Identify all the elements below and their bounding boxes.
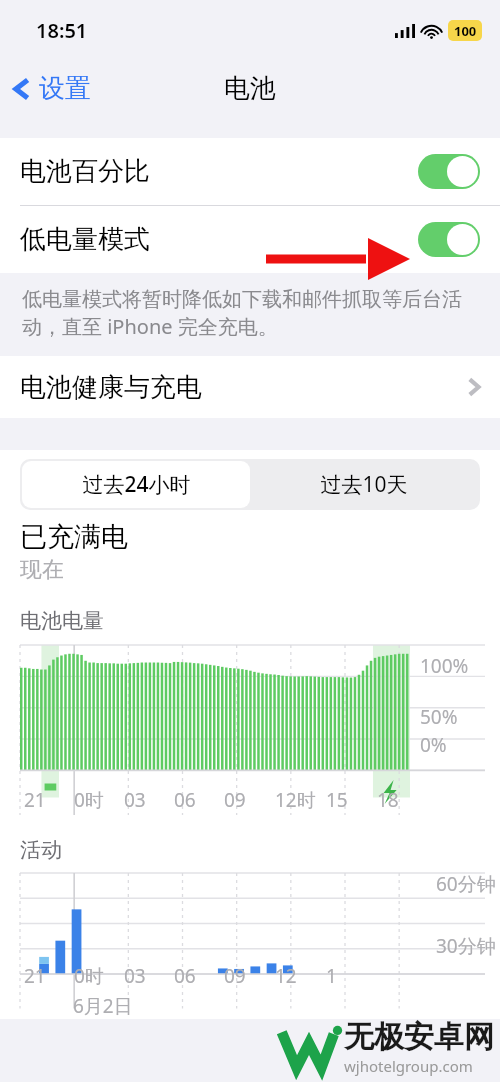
staticText: wjhotelgroup.com — [344, 1056, 473, 1076]
button[interactable]: 电池百分比 — [418, 154, 480, 189]
staticText: 1 — [326, 963, 337, 989]
button[interactable]: 电池百分比 — [0, 138, 500, 205]
button[interactable]: 电池健康与充电 — [0, 356, 500, 418]
staticText: 过去24小时 — [82, 470, 191, 499]
staticText: 18 — [377, 787, 399, 813]
staticText: 50% — [420, 704, 458, 730]
staticText: 0% — [420, 732, 447, 758]
staticText: 电池电量 — [20, 608, 104, 634]
staticText: 60分钟 — [436, 871, 496, 897]
staticText: 电池健康与充电 — [20, 371, 202, 404]
button[interactable]: 过去24小时 — [22, 461, 250, 508]
staticText: 已充满电 — [20, 520, 128, 554]
button[interactable]: 低电量模式 — [0, 206, 500, 273]
staticText: 18:51 — [36, 17, 88, 44]
staticText: 09 — [224, 787, 246, 813]
button[interactable]: 低电量模式 — [418, 222, 480, 257]
staticText: 100% — [420, 653, 469, 679]
button[interactable]: 设置 — [0, 66, 101, 111]
staticText: 无极安卓网 — [344, 1018, 494, 1056]
staticText: 0时 — [74, 787, 104, 813]
staticText: 03 — [124, 963, 146, 989]
staticText: 15 — [326, 787, 348, 813]
staticText: 03 — [124, 787, 146, 813]
staticText: 过去10天 — [320, 470, 408, 499]
staticText: 12 — [275, 963, 297, 989]
staticText: 100 — [454, 22, 477, 40]
staticText: 活动 — [20, 837, 62, 863]
staticText: 12时 — [275, 787, 316, 813]
staticText: 30分钟 — [436, 933, 496, 959]
staticText: 06 — [174, 787, 196, 813]
staticText: 0时 — [74, 963, 104, 989]
staticText: 09 — [224, 963, 246, 989]
staticText: 低电量模式 — [20, 223, 150, 256]
staticText: 6月2日 — [73, 993, 133, 1019]
staticText: 现在 — [20, 556, 64, 584]
staticText: 21 — [24, 963, 46, 989]
button[interactable]: 过去10天 — [250, 461, 478, 508]
staticText: 电池百分比 — [20, 155, 150, 188]
staticText: 21 — [24, 787, 46, 813]
staticText: 电池 — [224, 72, 276, 105]
staticText: 低电量模式将暂时降低如下载和邮件抓取等后台活动，直至 iPhone 完全充电。 — [22, 287, 482, 340]
staticText: 06 — [174, 963, 196, 989]
staticText: 设置 — [39, 72, 91, 105]
